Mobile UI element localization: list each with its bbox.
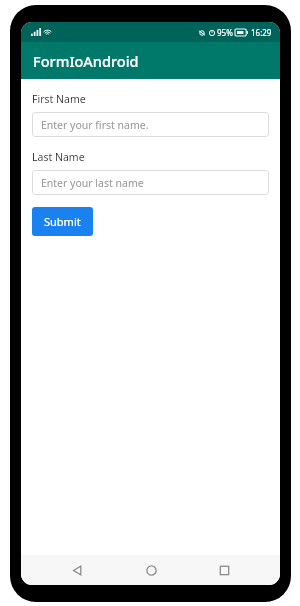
staticText: First Name (32, 92, 86, 106)
staticText: 95% (217, 27, 233, 38)
staticText: Enter your first name. (41, 118, 149, 132)
staticText: Enter your last name (41, 176, 144, 190)
button[interactable]: Submit (32, 207, 93, 236)
button[interactable]: Home (133, 556, 169, 584)
staticText: Last Name (32, 150, 85, 164)
button[interactable]: Enter your first name. (32, 112, 269, 137)
staticText: 16:29 (251, 27, 272, 38)
button[interactable]: Recents (206, 556, 242, 584)
button[interactable]: Back (59, 556, 95, 584)
button[interactable]: Enter your last name (32, 170, 269, 195)
staticText: FormIoAndroid (33, 51, 139, 71)
staticText: Submit (44, 214, 81, 229)
